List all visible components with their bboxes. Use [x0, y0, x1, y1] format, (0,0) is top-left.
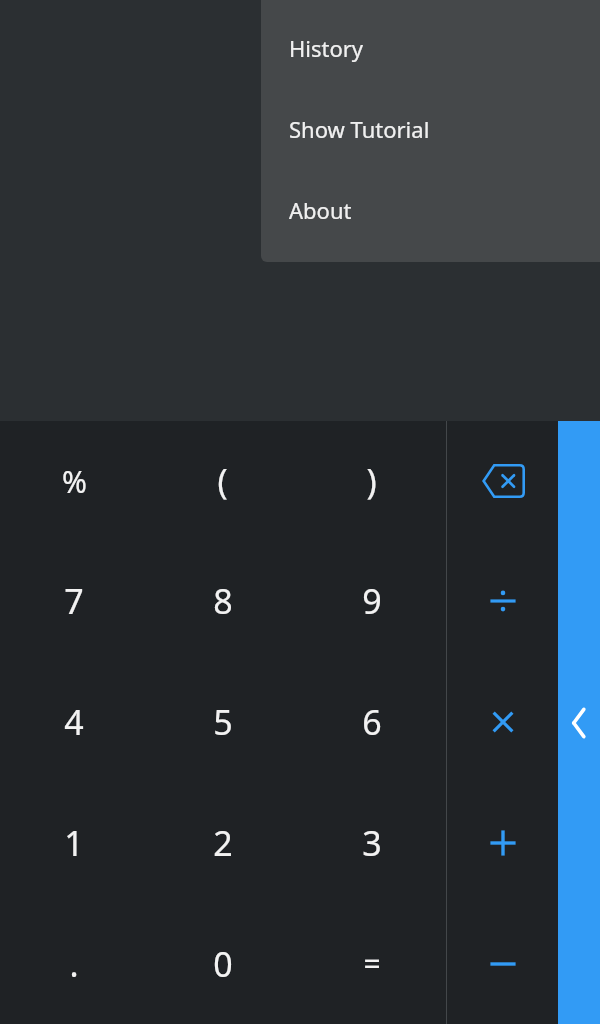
- button[interactable]: Plus: [447, 782, 558, 903]
- button[interactable]: 4: [0, 661, 148, 782]
- button[interactable]: History: [261, 8, 600, 88]
- staticText: 8: [213, 578, 233, 624]
- staticText: 1: [64, 820, 84, 866]
- button[interactable]: 3: [297, 782, 446, 903]
- staticText: 7: [64, 578, 84, 624]
- button[interactable]: 9: [297, 541, 446, 661]
- staticText: .: [69, 941, 79, 987]
- staticText: 0: [213, 941, 233, 987]
- staticText: History: [289, 33, 364, 63]
- button[interactable]: 1: [0, 782, 148, 903]
- button[interactable]: About: [261, 169, 600, 250]
- staticText: %: [62, 461, 87, 502]
- staticText: About: [289, 195, 352, 225]
- button[interactable]: =: [297, 903, 446, 1024]
- staticText: Show Tutorial: [289, 114, 430, 144]
- button[interactable]: Multiply: [447, 661, 558, 782]
- button[interactable]: Show Tutorial: [261, 88, 600, 169]
- staticText: 4: [64, 699, 84, 745]
- staticText: (: [217, 458, 228, 504]
- button[interactable]: 0: [148, 903, 297, 1024]
- button[interactable]: .: [0, 903, 148, 1024]
- button[interactable]: %: [0, 421, 148, 541]
- button[interactable]: 5: [148, 661, 297, 782]
- button[interactable]: (: [148, 421, 297, 541]
- staticText: 9: [362, 578, 382, 624]
- staticText: ): [366, 458, 377, 504]
- button[interactable]: 8: [148, 541, 297, 661]
- button[interactable]: Backspace: [447, 421, 558, 541]
- button[interactable]: Open advanced pad: [558, 421, 600, 1024]
- button[interactable]: ): [297, 421, 446, 541]
- staticText: 2: [213, 820, 233, 866]
- button[interactable]: 2: [148, 782, 297, 903]
- button[interactable]: 6: [297, 661, 446, 782]
- button[interactable]: 7: [0, 541, 148, 661]
- staticText: 5: [213, 699, 233, 745]
- staticText: 6: [362, 699, 382, 745]
- staticText: 3: [362, 820, 382, 866]
- staticText: =: [363, 943, 381, 984]
- button[interactable]: Minus: [447, 903, 558, 1024]
- button[interactable]: Divide: [447, 541, 558, 661]
